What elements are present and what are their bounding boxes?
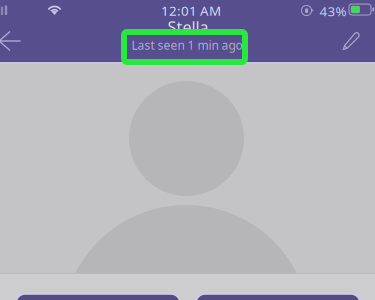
staticText: 43% <box>319 2 346 20</box>
staticText: Last seen 1 min ago <box>131 37 242 53</box>
button[interactable]: Edit <box>342 31 359 50</box>
button[interactable]: Back <box>0 31 21 51</box>
staticText: 12:01 AM <box>161 2 221 19</box>
staticText: Stella <box>167 16 208 38</box>
button[interactable]: Message <box>16 294 180 300</box>
button[interactable]: Call <box>196 294 360 300</box>
